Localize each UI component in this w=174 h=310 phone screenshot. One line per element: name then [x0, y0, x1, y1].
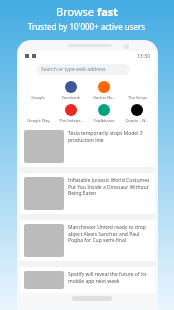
button[interactable]: Google — [23, 81, 53, 100]
button[interactable]: Search or type web address — [36, 64, 130, 75]
button[interactable]: Tesla temporarily stops Model 3 producti… — [20, 126, 155, 167]
staticText: Trusted by 10'000+ active users — [28, 21, 146, 32]
button[interactable]: TripAdvisor — [89, 104, 119, 123]
button[interactable]: Manchester United ready to drop abject A… — [20, 220, 155, 261]
staticText: Inflatable Jurassic World Costumes Put Y… — [68, 177, 151, 196]
button[interactable]: Quartz – N... — [122, 104, 152, 123]
staticText: Manchester United ready to drop abject A… — [68, 224, 151, 243]
staticText: TripAdvisor — [93, 118, 115, 123]
staticText: The Verge — [128, 95, 147, 100]
button[interactable]: Inflatable Jurassic World Costumes Put Y… — [20, 173, 155, 214]
button[interactable]: Hacker Ne... — [89, 81, 119, 100]
staticText: Search or type web address — [41, 66, 106, 73]
staticText: fast — [97, 4, 119, 19]
staticText: Google — [31, 95, 45, 100]
staticText: Browse — [56, 4, 97, 19]
staticText: Quartz – N... — [125, 118, 149, 123]
button[interactable]: The Indepe... — [56, 104, 86, 123]
button[interactable]: Google Play — [23, 104, 53, 123]
staticText: Google Play — [27, 118, 50, 123]
staticText: 13:30 — [137, 53, 150, 60]
staticText: Facebook — [62, 95, 80, 100]
staticText: Spotify will reveal the future of its mo… — [68, 271, 151, 284]
staticText: The Indepe... — [59, 118, 84, 123]
button[interactable]: The Verge — [122, 81, 152, 100]
staticText: Hacker Ne... — [93, 95, 116, 100]
button[interactable]: Facebook — [56, 81, 86, 100]
staticText: Tesla temporarily stops Model 3 producti… — [68, 130, 151, 143]
button[interactable]: Spotify will reveal the future of its mo… — [20, 267, 155, 293]
